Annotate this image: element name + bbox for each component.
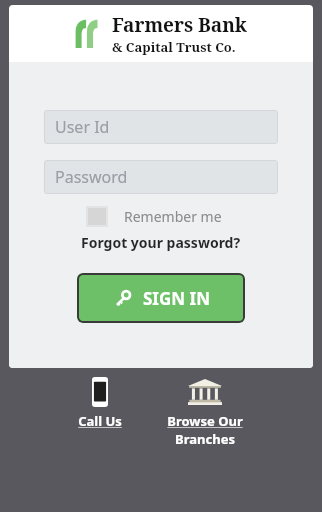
button[interactable]: Browse Our Branches [150,374,260,444]
staticText: Call Us [78,412,122,430]
staticText: Password [55,166,128,188]
staticText: Forgot your password? [81,233,241,252]
button[interactable]: Forgot your password? [9,233,313,252]
staticText: SIGN IN [143,287,210,310]
staticText: Browse Our [167,412,243,430]
button[interactable]: Call Us [50,374,150,430]
staticText: & Capital Trust Co. [112,38,236,56]
staticText: User Id [55,116,110,138]
button[interactable]: Password [44,160,278,194]
button[interactable]: Remember me [86,206,313,227]
staticText: Farmers Bank [112,12,247,38]
staticText: Remember me [124,207,222,226]
button[interactable]: User Id [44,110,278,144]
staticText: Branches [175,430,235,444]
button[interactable]: SIGN IN [77,273,245,323]
